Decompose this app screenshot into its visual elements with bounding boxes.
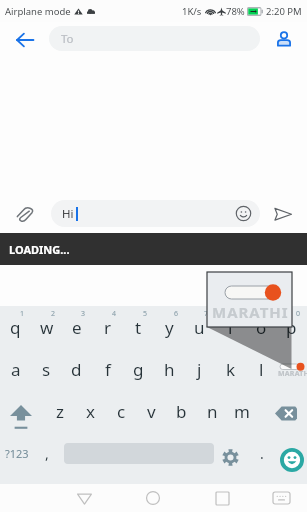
button[interactable]: Hi	[51, 200, 260, 227]
staticText: .	[260, 444, 264, 463]
button[interactable]: Recents	[200, 484, 244, 512]
staticText: 1K/s	[182, 5, 202, 18]
staticText: g	[133, 358, 144, 381]
staticText: 7	[204, 309, 209, 319]
staticText: MARATHI	[278, 369, 307, 379]
staticText: t	[135, 316, 142, 339]
button[interactable]: e	[61, 306, 92, 348]
button[interactable]: Home	[131, 484, 175, 512]
staticText: Hi	[62, 206, 74, 222]
staticText: q	[10, 316, 21, 339]
button[interactable]: t	[123, 306, 154, 348]
button[interactable]: q	[0, 306, 31, 348]
staticText: i	[228, 316, 233, 339]
staticText: m	[234, 400, 250, 423]
staticText: s	[42, 358, 51, 381]
button[interactable]: f	[92, 348, 123, 390]
staticText: 5	[143, 309, 148, 319]
staticText: r	[104, 316, 112, 339]
button[interactable]: ?123	[0, 432, 33, 474]
staticText: 2	[51, 309, 56, 319]
button[interactable]: Shift	[0, 390, 45, 432]
staticText: u	[194, 316, 205, 339]
staticText: w	[40, 316, 54, 339]
staticText: ?123	[5, 446, 29, 461]
staticText: c	[117, 400, 126, 423]
button[interactable]: Attach	[10, 200, 38, 228]
button[interactable]: .	[248, 432, 276, 474]
staticText: e	[72, 316, 82, 339]
button[interactable]: r	[92, 306, 123, 348]
staticText: 9	[266, 309, 271, 319]
button[interactable]: u	[184, 306, 215, 348]
button[interactable]: Settings	[214, 432, 248, 474]
staticText: n	[207, 400, 218, 423]
button[interactable]: Space	[60, 432, 214, 474]
staticText: MARATHI	[212, 302, 289, 322]
button[interactable]: w	[31, 306, 62, 348]
button[interactable]: Contacts	[269, 24, 299, 54]
staticText: LOADING...	[9, 242, 70, 257]
staticText: 78%	[226, 5, 245, 18]
button[interactable]: o	[246, 306, 277, 348]
button[interactable]: p	[276, 306, 307, 348]
button[interactable]: To	[49, 26, 260, 51]
staticText: v	[147, 400, 156, 423]
staticText: To	[61, 31, 74, 47]
staticText: a	[11, 358, 21, 381]
staticText: b	[176, 400, 187, 423]
button[interactable]: Backspace	[257, 390, 307, 432]
staticText: x	[86, 400, 95, 423]
staticText: o	[256, 316, 267, 339]
button[interactable]: x	[75, 390, 105, 432]
button[interactable]: n	[197, 390, 227, 432]
staticText: k	[226, 358, 236, 381]
staticText: 2:20 PM	[266, 5, 302, 18]
button[interactable]: b	[166, 390, 196, 432]
button[interactable]: Back	[62, 484, 106, 512]
button[interactable]: Send	[269, 200, 297, 228]
staticText: 0	[296, 309, 301, 319]
button[interactable]: k	[215, 348, 246, 390]
staticText: 1	[20, 309, 25, 319]
button[interactable]: Emoji	[276, 432, 307, 474]
staticText: p	[286, 316, 297, 339]
button[interactable]: a	[0, 348, 31, 390]
button[interactable]: j	[184, 348, 215, 390]
button[interactable]: c	[106, 390, 136, 432]
button[interactable]: i	[215, 306, 246, 348]
staticText: 8	[235, 309, 240, 319]
button[interactable]: ,	[33, 432, 60, 474]
staticText: y	[165, 316, 174, 339]
staticText: Airplane mode	[5, 5, 71, 18]
button[interactable]: l	[246, 348, 277, 390]
staticText: l	[259, 358, 264, 381]
staticText: d	[71, 358, 82, 381]
button[interactable]: Keyboard	[259, 484, 303, 512]
staticText: j	[197, 358, 202, 381]
button[interactable]: z	[45, 390, 75, 432]
staticText: ,	[45, 444, 49, 463]
staticText: h	[164, 358, 175, 381]
staticText: 3	[81, 309, 86, 319]
staticText: 4	[112, 309, 117, 319]
staticText: 6	[174, 309, 179, 319]
button[interactable]: Back	[10, 25, 40, 55]
button[interactable]: g	[123, 348, 154, 390]
button[interactable]: m	[227, 390, 257, 432]
button[interactable]: h	[154, 348, 185, 390]
staticText: f	[105, 358, 111, 381]
button[interactable]: v	[136, 390, 166, 432]
button[interactable]: y	[154, 306, 185, 348]
button[interactable]: d	[61, 348, 92, 390]
button[interactable]: s	[31, 348, 62, 390]
staticText: z	[56, 400, 64, 423]
